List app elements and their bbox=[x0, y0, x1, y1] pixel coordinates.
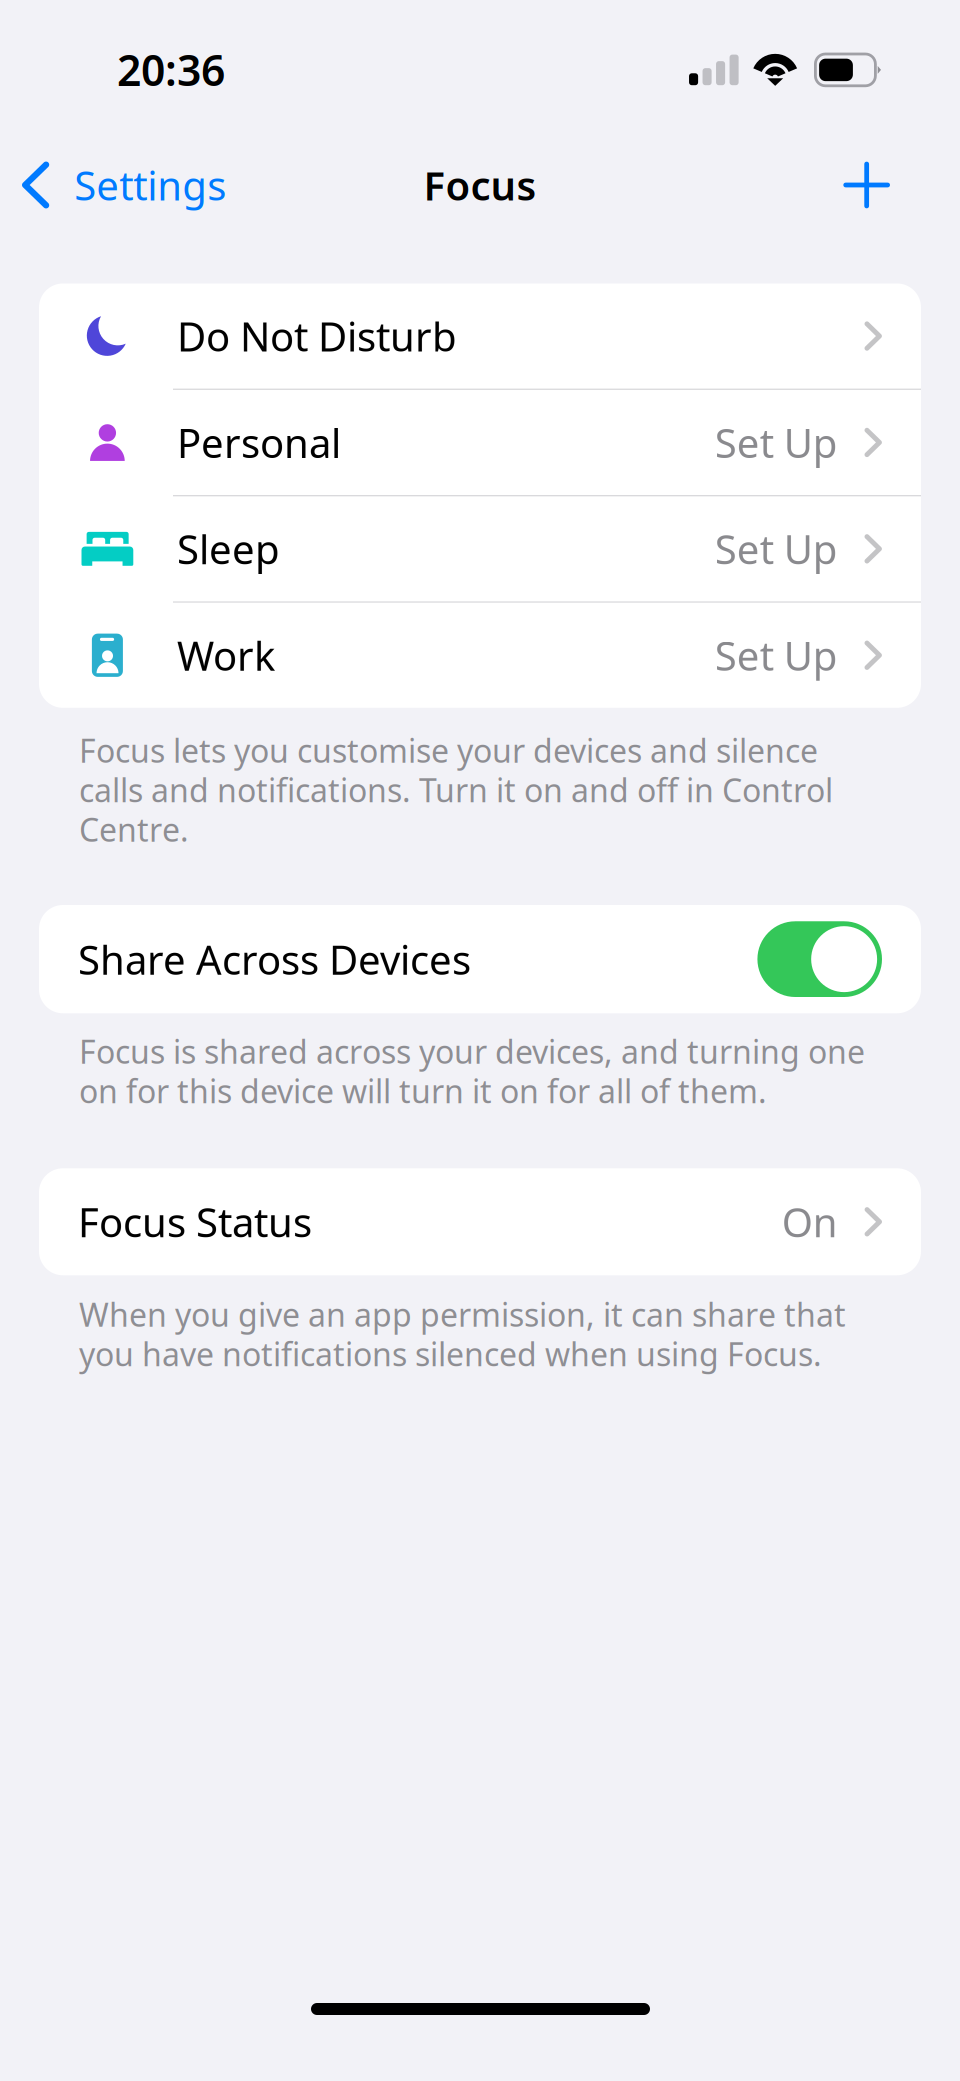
staticText: Focus bbox=[423, 158, 536, 211]
button[interactable]: Do Not Disturb bbox=[39, 283, 921, 389]
button[interactable]: Personal bbox=[39, 390, 921, 495]
button[interactable]: Share Across Devices bbox=[39, 905, 921, 1013]
staticText: Personal bbox=[177, 416, 341, 469]
button[interactable]: Focus Status bbox=[39, 1168, 921, 1275]
staticText: Set Up bbox=[715, 629, 838, 682]
button[interactable]: Sleep bbox=[39, 496, 921, 601]
staticText: When you give an app permission, it can … bbox=[79, 1293, 846, 1375]
staticText: Share Across Devices bbox=[78, 933, 471, 986]
staticText: Do Not Disturb bbox=[177, 309, 457, 363]
staticText: Focus lets you customise your devices an… bbox=[79, 729, 833, 850]
staticText: On bbox=[782, 1195, 838, 1248]
button[interactable]: Settings bbox=[0, 138, 300, 232]
staticText: Focus Status bbox=[78, 1195, 312, 1248]
staticText: Sleep bbox=[177, 522, 280, 575]
staticText: Focus is shared across your devices, and… bbox=[79, 1030, 865, 1112]
staticText: Set Up bbox=[715, 416, 838, 469]
button[interactable]: Work bbox=[39, 603, 921, 708]
button[interactable]: Add Focus bbox=[817, 138, 960, 232]
staticText: Set Up bbox=[715, 522, 838, 575]
staticText: Work bbox=[177, 629, 275, 682]
staticText: 20:36 bbox=[117, 41, 225, 98]
staticText: Settings bbox=[74, 158, 226, 211]
